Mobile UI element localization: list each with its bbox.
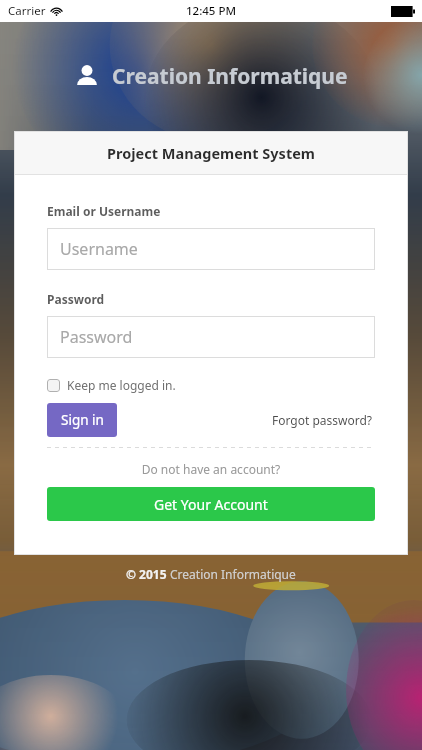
- staticText: Password: [47, 291, 105, 307]
- button[interactable]: Forgot password?: [270, 408, 375, 432]
- button[interactable]: Password: [47, 316, 375, 358]
- staticText: Sign in: [61, 411, 104, 429]
- staticText: © 2015: [126, 566, 170, 582]
- staticText: Carrier: [8, 3, 46, 19]
- staticText: Password: [60, 326, 133, 348]
- staticText: Forgot password?: [272, 412, 373, 428]
- button[interactable]: Sign in: [47, 403, 117, 437]
- staticText: Username: [60, 238, 138, 260]
- staticText: Keep me logged in.: [67, 377, 176, 393]
- staticText: Creation Informatique: [112, 62, 348, 91]
- staticText: Email or Username: [47, 203, 161, 219]
- staticText: Creation Informatique: [170, 566, 296, 582]
- button[interactable]: Username: [47, 228, 375, 270]
- button[interactable]: Get Your Account: [47, 487, 375, 521]
- staticText: Project Management System: [107, 143, 315, 163]
- button[interactable]: Keep me logged in.: [47, 377, 176, 393]
- staticText: Do not have an account?: [47, 461, 375, 477]
- staticText: 12:45 PM: [186, 3, 237, 19]
- staticText: Get Your Account: [154, 495, 268, 514]
